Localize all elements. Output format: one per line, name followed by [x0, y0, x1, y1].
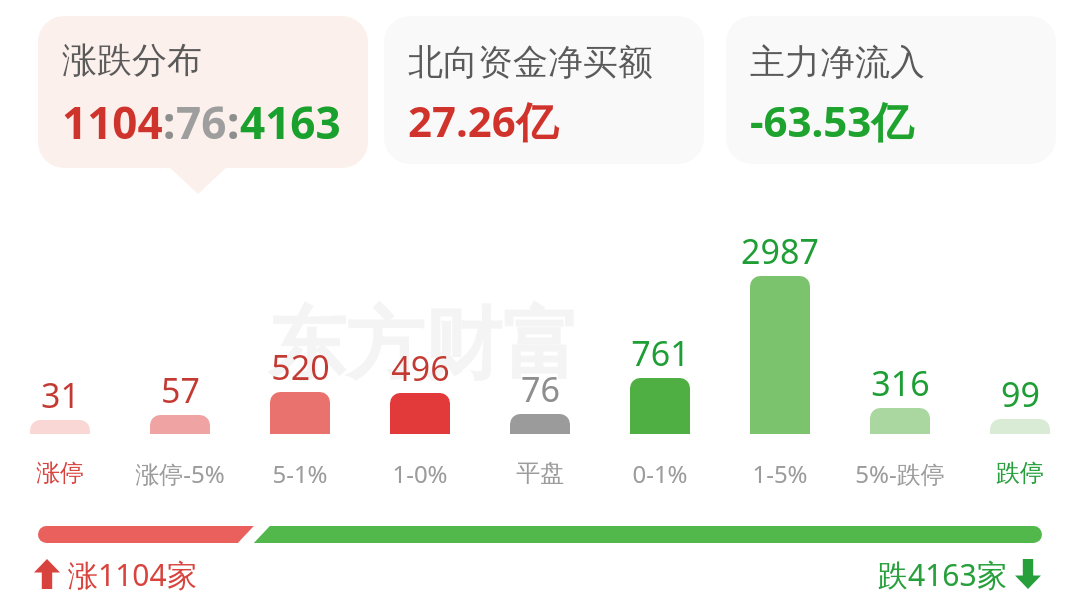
other: 下跌	[1015, 559, 1041, 589]
staticText: 涨1104家	[68, 554, 197, 594]
button[interactable]: 北向资金净买额	[384, 16, 704, 164]
staticText: 27.26亿	[408, 92, 558, 149]
button[interactable]: 1-0%	[350, 456, 490, 490]
staticText: 496	[391, 345, 450, 391]
staticText: 1-0%	[392, 457, 448, 490]
staticText: 北向资金净买额	[408, 40, 653, 84]
button[interactable]: 主力净流入	[726, 16, 1056, 164]
button[interactable]: 涨停	[0, 456, 130, 490]
staticText: 76	[176, 92, 227, 152]
button[interactable]: 跌停	[950, 456, 1080, 490]
staticText: -63.53亿	[750, 92, 914, 149]
staticText: 5%-跌停	[855, 457, 945, 490]
staticText: 1104	[62, 92, 163, 152]
staticText: 2987	[741, 228, 819, 274]
staticText: 涨跌分布	[62, 38, 202, 82]
button[interactable]: 平盘	[470, 456, 610, 490]
staticText: 东方财富	[268, 296, 580, 394]
staticText: 316	[871, 360, 930, 406]
staticText: 主力净流入	[750, 40, 925, 84]
button[interactable]: 5%-跌停	[830, 456, 970, 490]
staticText: 1-5%	[752, 457, 808, 490]
staticText: 5-1%	[272, 457, 328, 490]
staticText: 0-1%	[632, 457, 688, 490]
staticText: 平盘	[516, 458, 564, 488]
button[interactable]: 涨跌分布	[38, 16, 368, 168]
button[interactable]: 跌4163家	[878, 554, 1041, 594]
staticText: 761	[631, 330, 690, 376]
staticText: 跌4163家	[878, 554, 1007, 594]
staticText: 57	[161, 367, 200, 413]
staticText: :	[227, 92, 240, 152]
staticText: 31	[41, 372, 80, 418]
staticText: 4163	[240, 92, 341, 152]
button[interactable]: 涨停-5%	[110, 456, 250, 490]
staticText: :	[163, 92, 176, 152]
staticText: 76	[521, 366, 560, 412]
button[interactable]: 1-5%	[710, 456, 850, 490]
button[interactable]: 上涨	[34, 554, 197, 594]
button[interactable]: 5-1%	[230, 456, 370, 490]
button[interactable]: 0-1%	[590, 456, 730, 490]
staticText: 涨停	[36, 458, 84, 488]
staticText: 520	[271, 344, 330, 390]
staticText: 跌停	[996, 458, 1044, 488]
staticText: 涨停-5%	[135, 457, 225, 490]
staticText: 99	[1001, 371, 1040, 417]
other: 上涨	[34, 559, 60, 589]
